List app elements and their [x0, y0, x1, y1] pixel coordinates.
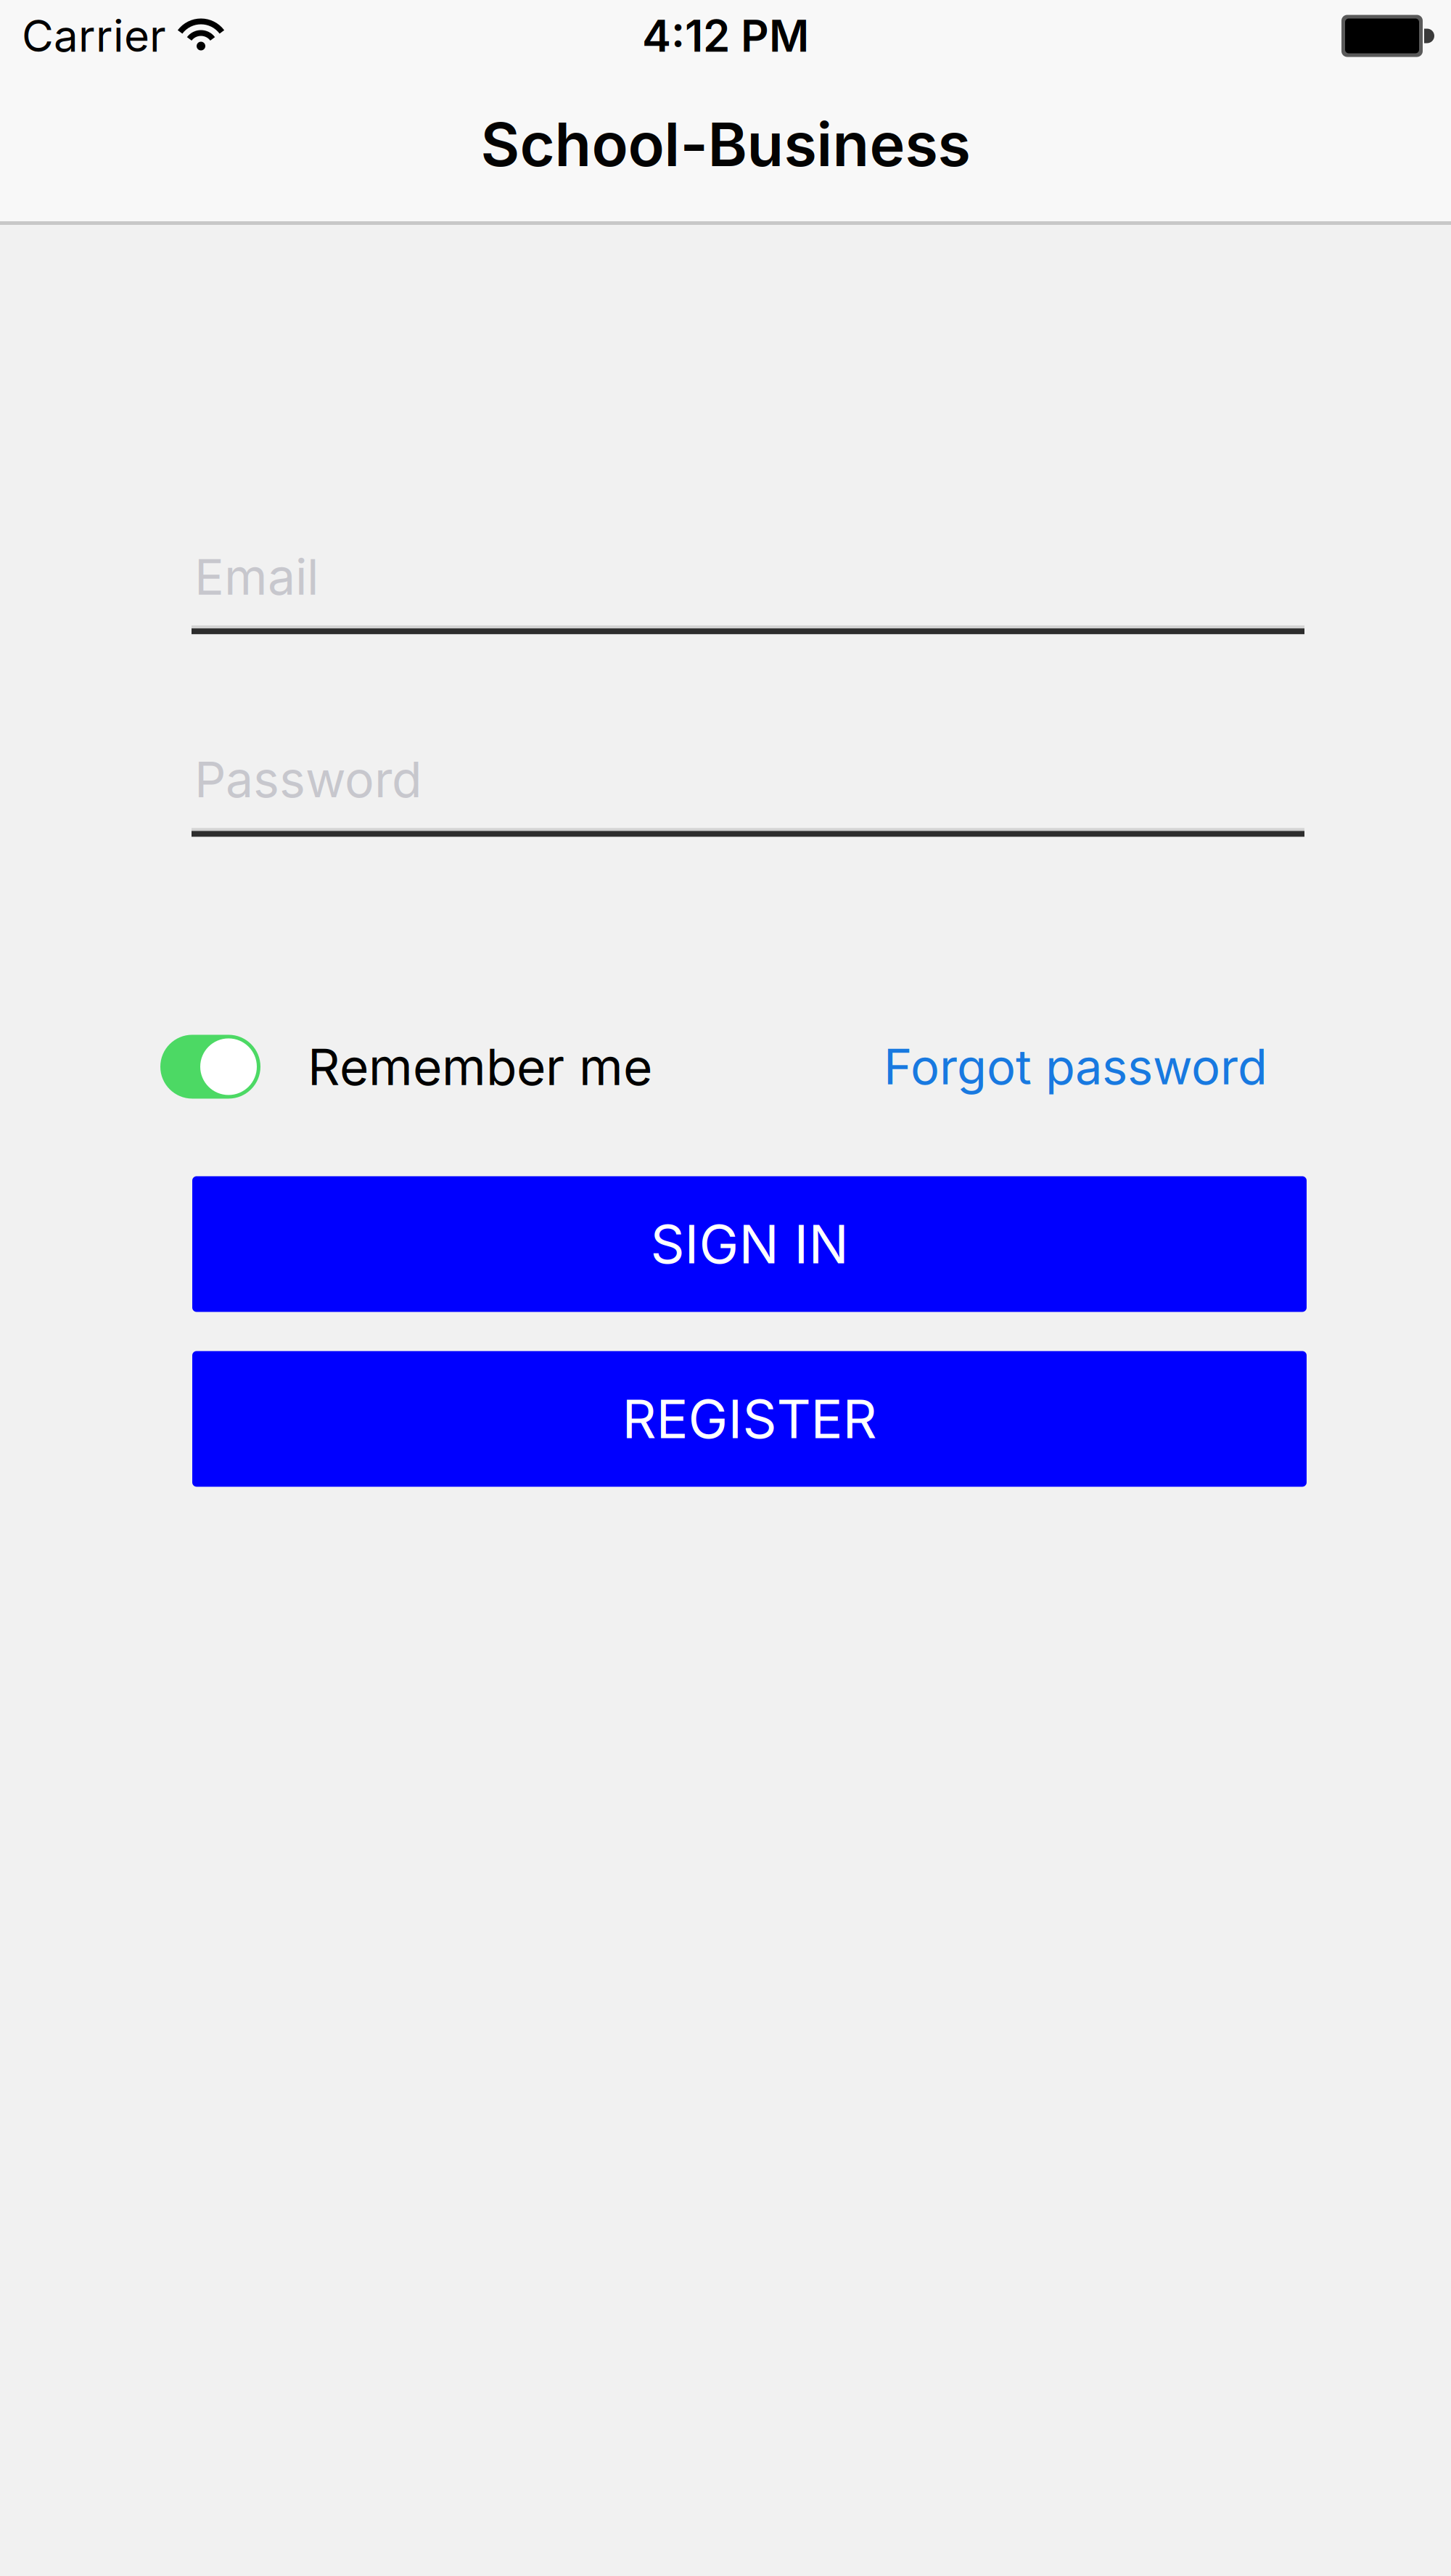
staticText: Password [194, 750, 422, 808]
staticText: 4:12 PM [642, 10, 809, 62]
staticText: Carrier [22, 10, 166, 62]
staticText: School-Business [481, 109, 970, 180]
staticText: REGISTER [622, 1388, 877, 1450]
button[interactable]: REGISTER [192, 1351, 1307, 1487]
staticText: Forgot password [884, 1038, 1267, 1095]
button[interactable]: Forgot password [884, 1038, 1267, 1095]
button[interactable]: SIGN IN [192, 1176, 1307, 1312]
staticText: Remember me [308, 1037, 652, 1096]
button[interactable] [160, 1035, 260, 1099]
staticText: Email [194, 548, 318, 606]
staticText: SIGN IN [650, 1213, 848, 1275]
